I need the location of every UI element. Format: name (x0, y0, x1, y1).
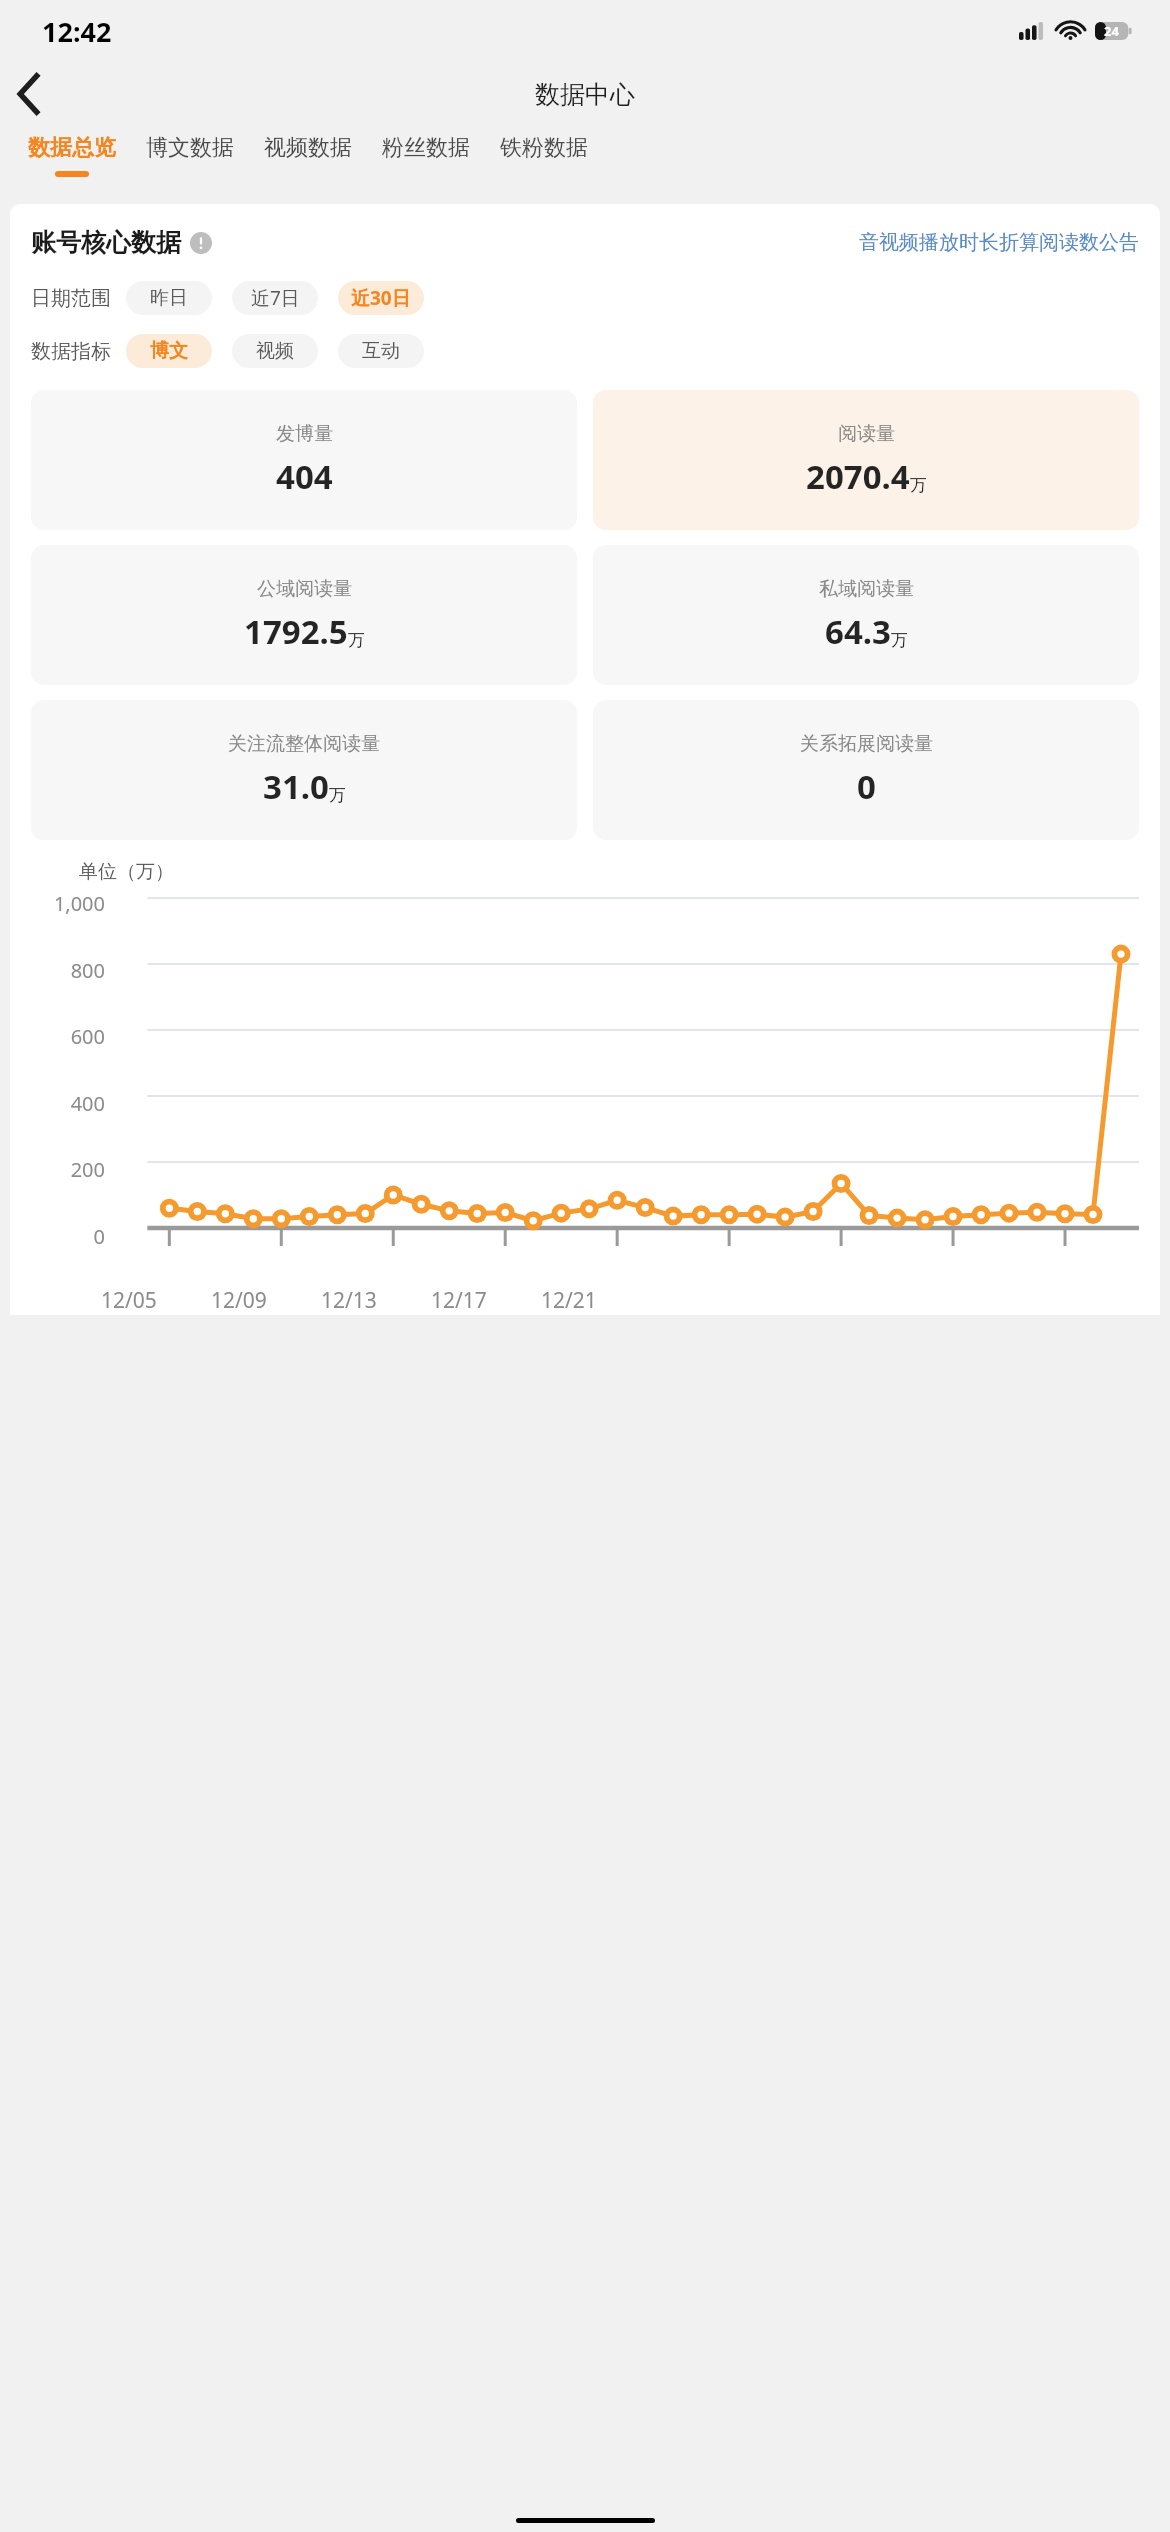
staticText: 12/21 (541, 1286, 651, 1315)
button[interactable]: 互动 (338, 334, 424, 368)
staticText: 铁粉数据 (500, 134, 588, 162)
staticText: 2070.4 (806, 454, 910, 499)
staticText: 视频 (256, 339, 294, 363)
button[interactable]: 昨日 (126, 281, 212, 315)
staticText: 博文数据 (146, 134, 234, 162)
button[interactable]: Back (0, 65, 58, 123)
staticText: 日期范围 (31, 286, 111, 311)
button[interactable]: 公域阅读量 (31, 545, 577, 685)
staticText: 公域阅读量 (257, 577, 352, 601)
staticText: 昨日 (150, 286, 188, 310)
staticText: 400 (31, 1090, 105, 1117)
staticText: 关系拓展阅读量 (800, 732, 933, 756)
staticText: 600 (31, 1023, 105, 1050)
staticText: 31.0 (263, 764, 329, 809)
button[interactable]: 视频 (232, 334, 318, 368)
staticText: 万 (910, 475, 927, 496)
button[interactable]: 阅读量 (593, 390, 1139, 530)
staticText: 1,000 (31, 890, 105, 917)
button[interactable]: 近30日 (338, 281, 424, 315)
staticText: 64.3 (825, 609, 891, 654)
staticText: 互动 (362, 339, 400, 363)
button[interactable]: 粉丝数据 (367, 126, 485, 171)
button[interactable]: Info (190, 232, 212, 254)
staticText: 200 (31, 1156, 105, 1183)
button[interactable]: 近7日 (232, 281, 318, 315)
button[interactable]: 博文 (126, 334, 212, 368)
staticText: 发博量 (276, 422, 333, 446)
staticText: 12/05 (101, 1286, 211, 1315)
button[interactable]: 铁粉数据 (485, 126, 603, 171)
staticText: 视频数据 (264, 134, 352, 162)
staticText: 博文 (150, 339, 188, 363)
staticText: 1792.5 (244, 609, 348, 654)
staticText: 12:42 (42, 13, 112, 50)
staticText: 阅读量 (838, 422, 895, 446)
staticText: 万 (348, 630, 365, 651)
button[interactable]: 数据总览 (13, 126, 131, 177)
staticText: 数据总览 (28, 134, 116, 162)
staticText: 数据指标 (31, 339, 111, 364)
staticText: 账号核心数据 (31, 227, 181, 258)
button[interactable]: 私域阅读量 (593, 545, 1139, 685)
staticText: 万 (329, 785, 346, 806)
staticText: 0 (857, 764, 876, 809)
staticText: 24 (1104, 22, 1119, 40)
button[interactable]: 关系拓展阅读量 (593, 700, 1139, 840)
button[interactable]: 视频数据 (249, 126, 367, 171)
staticText: 404 (276, 454, 333, 499)
button[interactable]: 博文数据 (131, 126, 249, 171)
staticText: 近7日 (251, 285, 300, 311)
staticText: 粉丝数据 (382, 134, 470, 162)
staticText: 12/13 (321, 1286, 431, 1315)
staticText: 数据中心 (535, 79, 635, 110)
button[interactable]: 关注流整体阅读量 (31, 700, 577, 840)
staticText: 万 (891, 630, 908, 651)
button[interactable]: 发博量 (31, 390, 577, 530)
staticText: 12/17 (431, 1286, 541, 1315)
staticText: 关注流整体阅读量 (228, 732, 380, 756)
staticText: 0 (31, 1223, 105, 1250)
staticText: 近30日 (351, 285, 411, 311)
staticText: 800 (31, 957, 105, 984)
staticText: 私域阅读量 (819, 577, 914, 601)
staticText: 12/09 (211, 1286, 321, 1315)
staticText: 单位（万） (79, 860, 174, 884)
button[interactable]: 音视频播放时长折算阅读数公告 (859, 230, 1139, 255)
